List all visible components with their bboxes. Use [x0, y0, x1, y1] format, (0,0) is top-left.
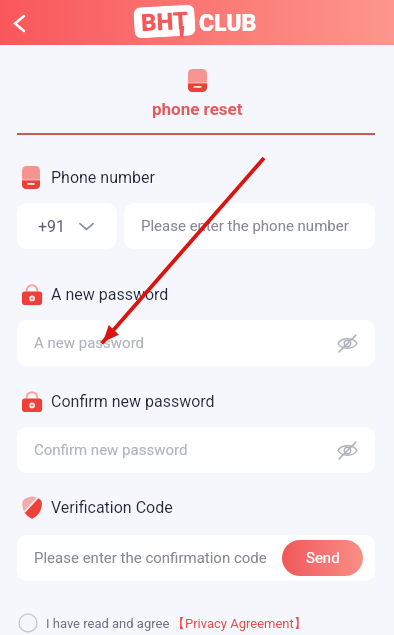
staticText: Verification Code: [51, 498, 173, 517]
staticText: CLUB: [199, 10, 257, 37]
button[interactable]: Send: [282, 540, 363, 576]
button[interactable]: Confirm new password: [17, 427, 375, 473]
staticText: Confirm new password: [51, 392, 215, 411]
button[interactable]: Please enter the confirmation code: [17, 535, 375, 581]
staticText: Phone number: [51, 168, 155, 187]
staticText: BHT: [140, 7, 190, 37]
button[interactable]: Show password: [335, 438, 359, 462]
button[interactable]: A new password: [17, 320, 375, 366]
staticText: Please enter the phone number: [141, 217, 349, 235]
staticText: A new password: [34, 334, 145, 352]
staticText: I have read and agree: [46, 616, 170, 631]
button[interactable]: Show password: [335, 331, 359, 355]
button[interactable]: I have read and agree: [18, 612, 307, 634]
staticText: +91: [38, 217, 66, 236]
staticText: 【Privacy Agreement】: [172, 615, 307, 631]
button[interactable]: Please enter the phone number: [124, 203, 375, 249]
staticText: Please enter the confirmation code: [34, 549, 267, 567]
staticText: phone reset: [152, 99, 243, 119]
staticText: A new password: [51, 285, 169, 304]
button[interactable]: +91: [17, 203, 117, 249]
staticText: Send: [306, 549, 340, 567]
button[interactable]: Back: [2, 6, 36, 40]
staticText: Confirm new password: [34, 441, 188, 459]
